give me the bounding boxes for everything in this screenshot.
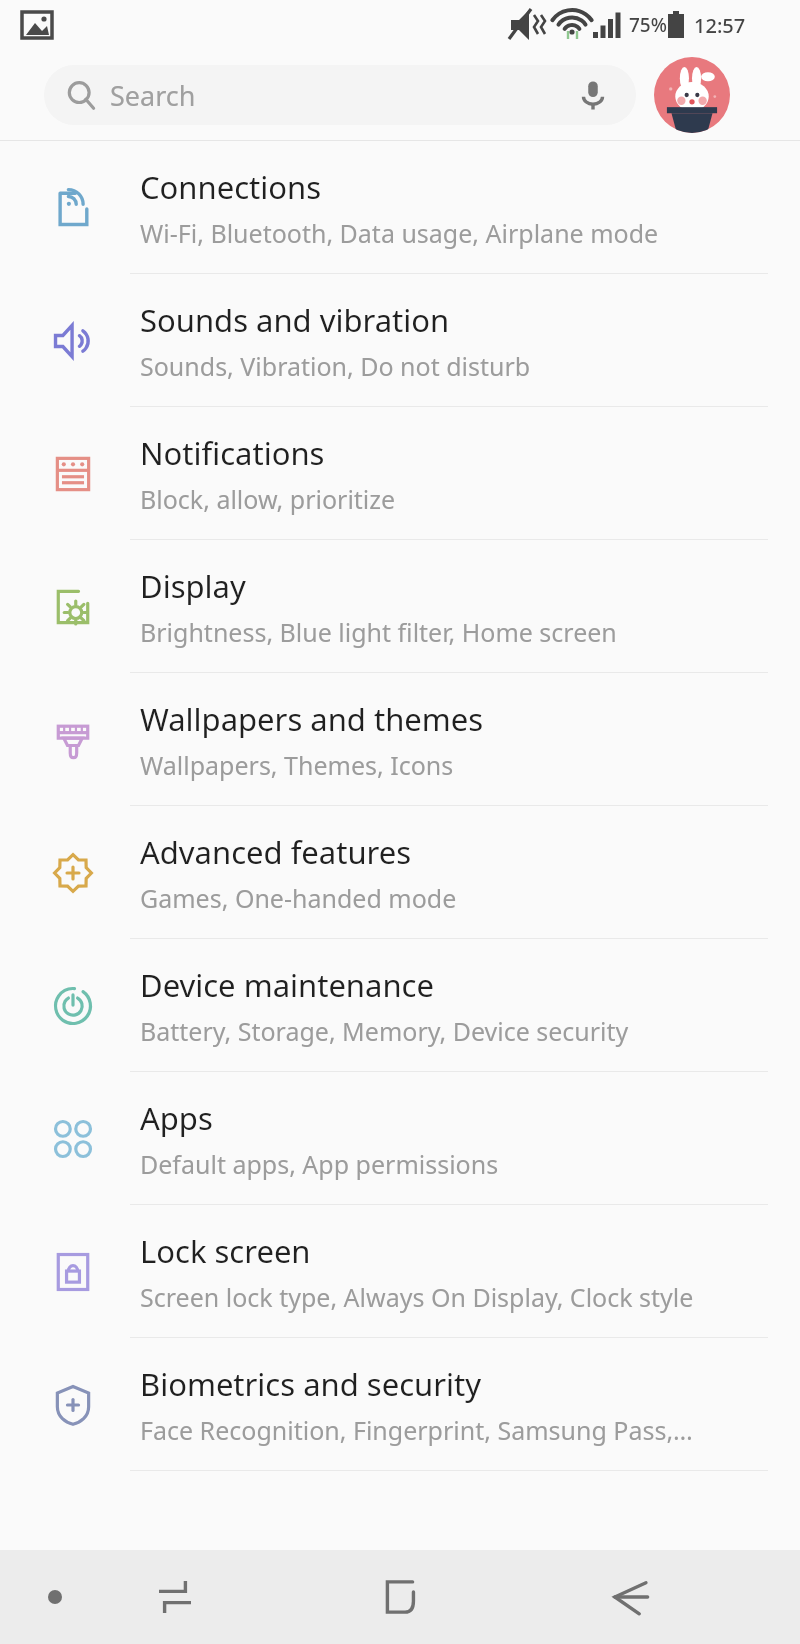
staticText: Wi-Fi, Bluetooth, Data usage, Airplane m…	[140, 216, 659, 250]
button[interactable]: Wallpapers and themes	[0, 673, 800, 806]
staticText: Battery, Storage, Memory, Device securit…	[140, 1014, 629, 1048]
staticText: Default apps, App permissions	[140, 1147, 499, 1181]
staticText: Block, allow, prioritize	[140, 482, 396, 516]
staticText: Sounds, Vibration, Do not disturb	[140, 349, 531, 383]
staticText: Advanced features	[140, 831, 412, 873]
staticText: Games, One-handed mode	[140, 881, 457, 915]
staticText: Display	[140, 565, 246, 607]
staticText: Connections	[140, 166, 321, 208]
staticText: Notifications	[140, 432, 325, 474]
button[interactable]: Profile	[654, 57, 730, 133]
button[interactable]: Connections	[0, 141, 800, 274]
button[interactable]: Recents	[135, 1557, 215, 1637]
staticText: 12:57	[694, 12, 746, 39]
staticText: Search	[110, 77, 196, 114]
staticText: Biometrics and security	[140, 1363, 481, 1405]
button[interactable]: Voice search	[572, 74, 614, 116]
button[interactable]: Back	[590, 1557, 670, 1637]
staticText: Apps	[140, 1097, 213, 1139]
button[interactable]: Menu	[22, 1564, 88, 1630]
button[interactable]: Biometrics and security	[0, 1338, 800, 1471]
staticText: Wallpapers, Themes, Icons	[140, 748, 454, 782]
button[interactable]: Notifications	[0, 407, 800, 540]
button[interactable]: Search	[44, 65, 636, 125]
staticText: Lock screen	[140, 1230, 311, 1272]
staticText: Sounds and vibration	[140, 299, 450, 341]
staticText: Face Recognition, Fingerprint, Samsung P…	[140, 1413, 693, 1447]
button[interactable]: Advanced features	[0, 806, 800, 939]
button[interactable]: Device maintenance	[0, 939, 800, 1072]
button[interactable]: Sounds and vibration	[0, 274, 800, 407]
button[interactable]: Lock screen	[0, 1205, 800, 1338]
staticText: Wallpapers and themes	[140, 698, 484, 740]
button[interactable]: Display	[0, 540, 800, 673]
staticText: Brightness, Blue light filter, Home scre…	[140, 615, 617, 649]
staticText: Device maintenance	[140, 964, 434, 1006]
button[interactable]: Apps	[0, 1072, 800, 1205]
button[interactable]: Home	[358, 1555, 442, 1639]
staticText: Screen lock type, Always On Display, Clo…	[140, 1280, 694, 1314]
staticText: 75%	[629, 12, 667, 38]
